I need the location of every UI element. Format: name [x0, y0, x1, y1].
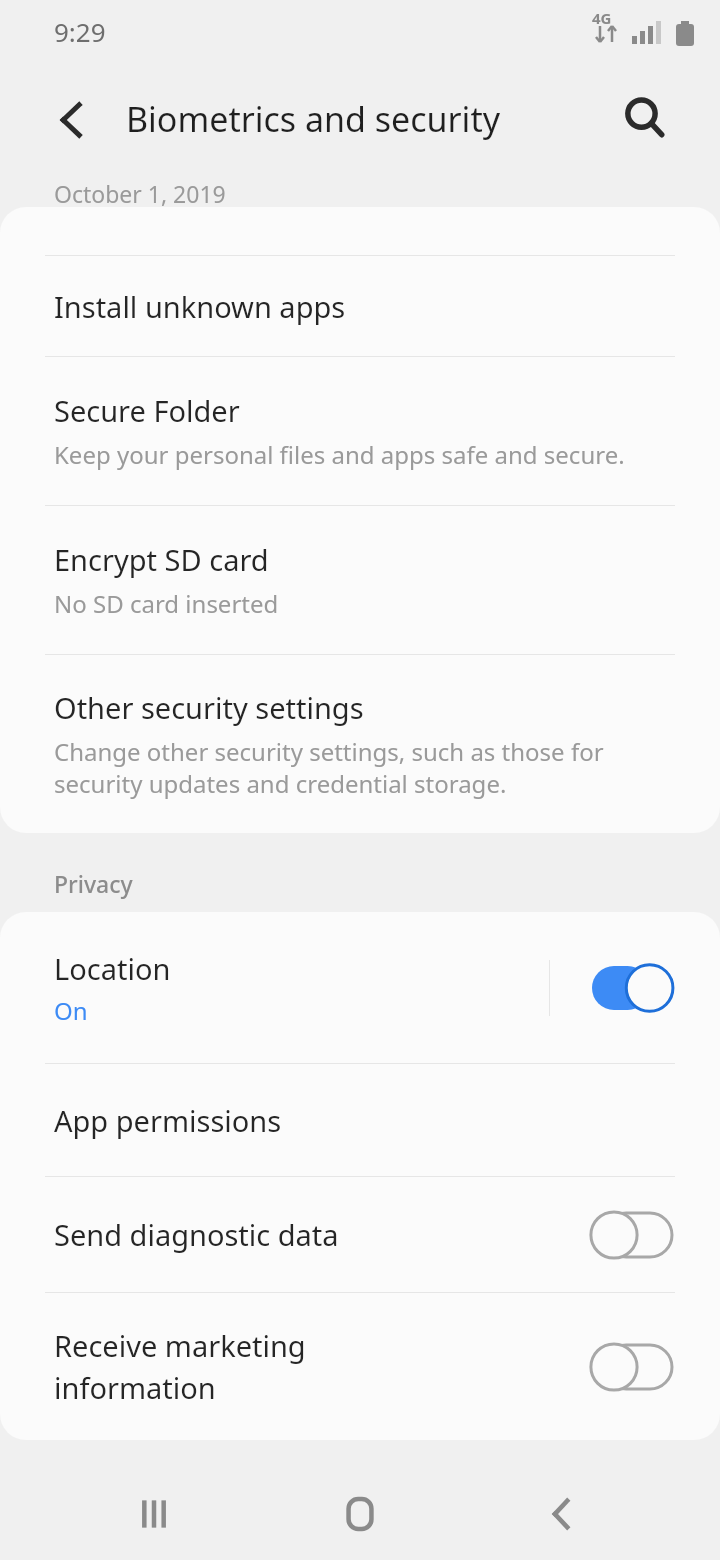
staticText: Send diagnostic data [54, 1215, 339, 1254]
button[interactable]: Toggle off [590, 1207, 680, 1263]
staticText: Secure Folder [54, 391, 240, 430]
button[interactable]: Other security settings [0, 655, 720, 833]
button[interactable]: Recents [110, 1470, 198, 1558]
button[interactable]: Home [316, 1470, 404, 1558]
button[interactable]: Back [518, 1470, 606, 1558]
staticText: No SD card inserted [54, 587, 279, 620]
button[interactable]: App permissions [0, 1064, 720, 1176]
button[interactable]: Install unknown apps [0, 256, 720, 356]
staticText: 4G [592, 8, 612, 28]
staticText: Other security settings [54, 688, 364, 727]
button[interactable]: Location [0, 912, 720, 1063]
staticText: Encrypt SD card [54, 540, 269, 579]
staticText: Install unknown apps [54, 287, 346, 326]
staticText: Change other security settings, such as … [54, 735, 604, 800]
staticText: Keep your personal files and apps safe a… [54, 438, 625, 471]
button[interactable]: Secure Folder [0, 357, 720, 505]
staticText: Biometrics and security [126, 96, 500, 142]
button[interactable]: Back [36, 84, 108, 156]
button[interactable]: Search [609, 82, 681, 154]
staticText: On [54, 994, 88, 1027]
button[interactable]: Receive marketing information [0, 1293, 720, 1440]
staticText: 9:29 [54, 14, 106, 49]
button[interactable]: Toggle off [590, 1339, 680, 1395]
button[interactable]: Toggle on [590, 960, 680, 1016]
staticText: October 1, 2019 [54, 178, 226, 209]
staticText: App permissions [54, 1101, 282, 1140]
button[interactable]: Encrypt SD card [0, 506, 720, 654]
staticText: Receive marketing information [54, 1326, 306, 1407]
button[interactable]: Send diagnostic data [0, 1177, 720, 1292]
staticText: Privacy [54, 868, 133, 899]
staticText: Location [54, 949, 171, 988]
